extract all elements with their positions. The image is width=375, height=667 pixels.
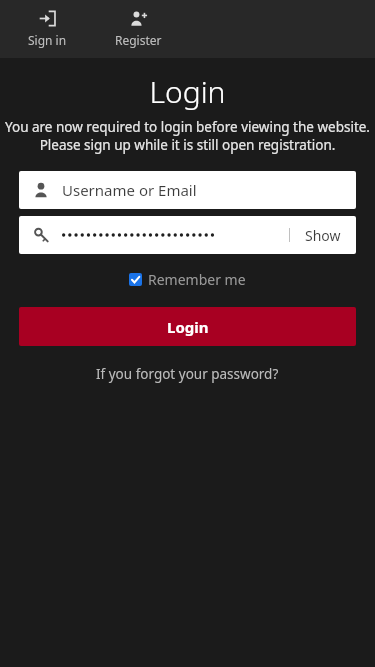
button[interactable]: Show password	[290, 216, 356, 254]
button[interactable]: If you forgot your password?	[88, 361, 287, 387]
button[interactable]: Remember me	[125, 266, 250, 293]
button[interactable]: Username or Email	[19, 171, 356, 209]
staticText: Show	[305, 226, 341, 245]
staticText: Register	[115, 32, 162, 48]
button[interactable]: Register	[101, 7, 176, 51]
staticText: Login	[0, 71, 375, 112]
button[interactable]: Show password	[19, 216, 356, 254]
staticText: Sign in	[28, 32, 67, 48]
staticText: Remember me	[148, 270, 246, 289]
staticText: Username or Email	[62, 180, 197, 200]
staticText: Login	[167, 317, 209, 337]
button[interactable]: Login	[19, 307, 356, 346]
staticText: You are now required to login before vie…	[2, 118, 373, 154]
staticText: If you forgot your password?	[96, 365, 279, 383]
button[interactable]: Sign in	[14, 7, 81, 51]
